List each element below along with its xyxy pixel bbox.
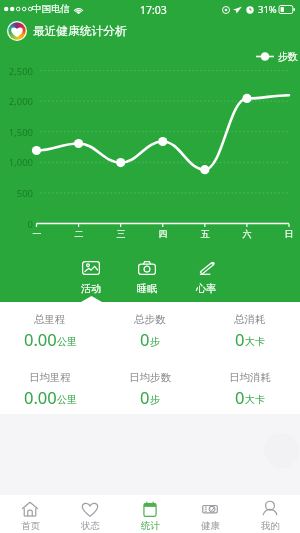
- staticText: 一: [27, 228, 47, 239]
- staticText: 状态: [81, 520, 100, 532]
- staticText: 日均里程: [29, 371, 71, 384]
- staticText: 心率: [196, 282, 217, 295]
- staticText: 1,500: [0, 126, 33, 139]
- staticText: 日均消耗: [229, 371, 271, 384]
- button[interactable]: 首页: [0, 495, 60, 533]
- button[interactable]: 总里程: [0, 311, 100, 352]
- staticText: 日均步数: [129, 371, 171, 384]
- staticText: 睡眠: [137, 282, 158, 295]
- staticText: 大卡: [245, 393, 265, 406]
- staticText: 活动: [81, 282, 102, 295]
- staticText: 三: [111, 228, 131, 239]
- staticText: 0.00: [24, 328, 57, 350]
- staticText: 大卡: [245, 335, 265, 348]
- staticText: 0: [235, 386, 245, 408]
- button[interactable]: 心率: [182, 256, 230, 298]
- button[interactable]: 健康: [180, 495, 240, 533]
- staticText: 二: [69, 228, 89, 239]
- button[interactable]: 总步数: [100, 311, 200, 352]
- button[interactable]: 我的: [240, 495, 300, 533]
- staticText: 我的: [261, 520, 280, 532]
- staticText: 最近健康统计分析: [33, 24, 127, 39]
- staticText: 中国电信: [32, 3, 70, 15]
- staticText: 健康: [201, 520, 220, 532]
- staticText: 公里: [57, 335, 77, 348]
- button[interactable]: 睡眠: [123, 256, 171, 298]
- staticText: 首页: [21, 520, 40, 532]
- button[interactable]: 状态: [60, 495, 120, 533]
- staticText: 0: [140, 328, 150, 350]
- staticText: 500: [0, 187, 33, 200]
- staticText: 步: [150, 393, 160, 406]
- staticText: 公里: [57, 393, 77, 406]
- staticText: 2,000: [0, 95, 33, 108]
- staticText: 17:03: [140, 3, 167, 17]
- staticText: 0: [140, 386, 150, 408]
- staticText: 1,000: [0, 156, 33, 169]
- staticText: 0: [0, 218, 33, 231]
- staticText: 统计: [141, 520, 160, 532]
- staticText: 五: [195, 228, 215, 239]
- button[interactable]: 日均消耗: [200, 369, 300, 410]
- staticText: 总消耗: [234, 313, 266, 326]
- staticText: 日: [279, 228, 299, 239]
- staticText: 四: [153, 228, 173, 239]
- staticText: 2,500: [0, 65, 33, 78]
- button[interactable]: 日均步数: [100, 369, 200, 410]
- staticText: 0.00: [24, 386, 57, 408]
- staticText: 步: [150, 335, 160, 348]
- staticText: 步数: [278, 50, 298, 63]
- button[interactable]: 日均里程: [0, 369, 100, 410]
- staticText: 总步数: [134, 313, 166, 326]
- button[interactable]: 统计: [120, 495, 180, 533]
- staticText: 六: [237, 228, 257, 239]
- staticText: 总里程: [34, 313, 66, 326]
- staticText: 31%: [258, 3, 277, 16]
- button[interactable]: 活动: [67, 256, 115, 298]
- staticText: 0: [235, 328, 245, 350]
- button[interactable]: 总消耗: [200, 311, 300, 352]
